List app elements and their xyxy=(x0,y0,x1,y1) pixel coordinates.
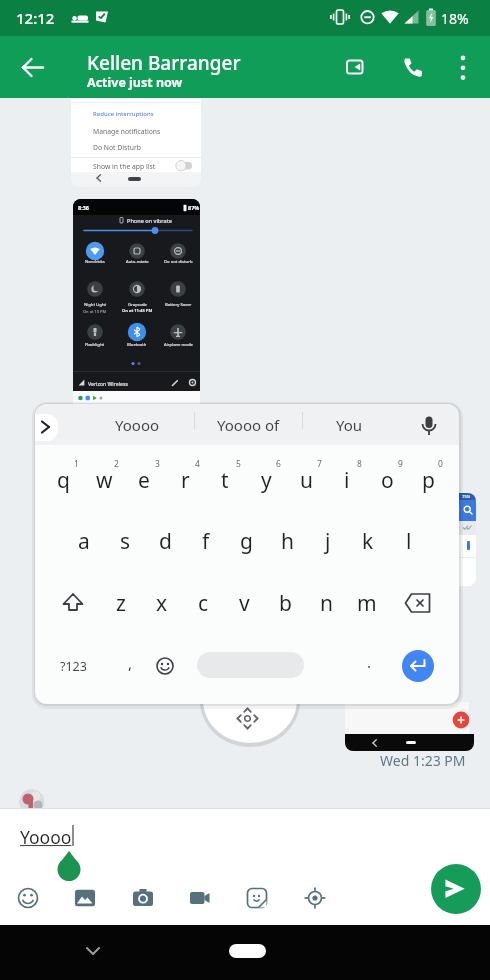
staticText: 18% xyxy=(441,9,469,28)
staticText: 0 xyxy=(438,458,443,470)
button[interactable] xyxy=(16,886,40,910)
staticText: 8:36 xyxy=(78,204,89,211)
button[interactable] xyxy=(175,160,193,172)
button[interactable]: y xyxy=(246,453,286,507)
staticText: , xyxy=(128,653,133,673)
staticText: e xyxy=(138,466,150,495)
button[interactable] xyxy=(450,51,482,83)
staticText: z xyxy=(116,589,126,618)
button[interactable] xyxy=(35,414,58,441)
staticText: Bluetooth xyxy=(127,342,147,348)
button[interactable]: r xyxy=(165,453,205,507)
button[interactable]: e xyxy=(124,453,164,507)
button[interactable] xyxy=(197,652,304,678)
button[interactable]: k xyxy=(348,514,388,568)
staticText: q xyxy=(57,466,70,495)
staticText: Auto-rotate xyxy=(126,259,149,265)
button[interactable]: c xyxy=(183,576,223,630)
button[interactable]: m xyxy=(347,576,387,630)
staticText: Kellen Barranger xyxy=(87,50,241,76)
staticText: a xyxy=(78,527,90,556)
button[interactable]: p xyxy=(408,453,448,507)
button[interactable]: Yoooo xyxy=(77,409,197,441)
button[interactable]: t xyxy=(205,453,245,507)
staticText: . xyxy=(367,652,372,672)
staticText: l xyxy=(406,527,412,556)
staticText: Yoooo of xyxy=(217,415,280,435)
button[interactable]: b xyxy=(265,576,305,630)
button[interactable]: n xyxy=(306,576,346,630)
button[interactable] xyxy=(421,416,437,438)
staticText: t xyxy=(221,466,229,495)
button[interactable] xyxy=(402,650,434,682)
staticText: m xyxy=(357,589,377,618)
button[interactable] xyxy=(398,51,430,83)
button[interactable]: j xyxy=(308,514,348,568)
staticText: v xyxy=(239,589,250,618)
button[interactable] xyxy=(86,944,100,958)
button[interactable]: l xyxy=(389,514,429,568)
staticText: 5 xyxy=(236,458,241,470)
staticText: 7 xyxy=(317,458,322,470)
button[interactable] xyxy=(20,55,46,80)
button[interactable]: h xyxy=(267,514,307,568)
staticText: Yoooo xyxy=(115,415,160,435)
button[interactable]: ?123 xyxy=(48,642,98,690)
staticText: p xyxy=(422,466,435,495)
staticText: Phone on vibrate xyxy=(127,217,172,225)
button[interactable]: a xyxy=(64,514,104,568)
staticText: j xyxy=(325,527,331,556)
staticText: 75% xyxy=(462,494,471,500)
staticText: d xyxy=(159,527,172,556)
button[interactable]: Yoooo of xyxy=(194,409,302,441)
button[interactable]: q xyxy=(43,453,83,507)
button[interactable] xyxy=(60,590,86,616)
button[interactable] xyxy=(153,654,177,678)
staticText: 4 xyxy=(195,458,200,470)
button[interactable] xyxy=(73,886,97,910)
button[interactable]: s xyxy=(105,514,145,568)
staticText: Show in the app list xyxy=(93,162,156,171)
button[interactable] xyxy=(340,51,374,83)
button[interactable]: z xyxy=(101,576,141,630)
staticText: Reduce interruptions xyxy=(93,110,154,118)
staticText: Battery Saver xyxy=(165,302,192,308)
button[interactable] xyxy=(431,864,481,914)
staticText: Do Not Disturb xyxy=(93,143,141,152)
staticText: Manage notifications xyxy=(93,127,161,136)
staticText: y xyxy=(261,466,272,495)
staticText: 1 xyxy=(74,458,79,470)
button[interactable]: v xyxy=(224,576,264,630)
staticText: w xyxy=(96,466,113,495)
button[interactable] xyxy=(303,886,327,910)
staticText: 12:12 xyxy=(16,8,55,28)
button[interactable]: i xyxy=(327,453,367,507)
button[interactable] xyxy=(404,591,432,615)
staticText: Flashlight xyxy=(85,342,105,348)
staticText: Yoooo xyxy=(20,825,72,849)
staticText: g xyxy=(240,527,253,556)
staticText: o xyxy=(381,466,394,495)
staticText: Active just now xyxy=(87,74,183,91)
button[interactable] xyxy=(229,944,266,958)
staticText: You xyxy=(336,415,363,435)
button[interactable] xyxy=(245,886,269,910)
staticText: r xyxy=(181,466,190,495)
staticText: 87% xyxy=(188,204,200,211)
button[interactable] xyxy=(188,886,212,910)
staticText: Airplane mode xyxy=(164,342,193,348)
button[interactable]: u xyxy=(286,453,326,507)
button[interactable]: o xyxy=(367,453,407,507)
button[interactable]: x xyxy=(142,576,182,630)
button[interactable] xyxy=(131,886,155,910)
staticText: ?123 xyxy=(60,658,87,675)
staticText: f xyxy=(202,527,210,556)
staticText: On at 10 PM xyxy=(83,309,107,314)
button[interactable]: w xyxy=(84,453,124,507)
button[interactable]: d xyxy=(145,514,185,568)
staticText: 3 xyxy=(155,458,160,470)
button[interactable]: f xyxy=(186,514,226,568)
staticText: 6 xyxy=(276,458,281,470)
button[interactable]: g xyxy=(226,514,266,568)
button[interactable]: You xyxy=(302,409,397,441)
